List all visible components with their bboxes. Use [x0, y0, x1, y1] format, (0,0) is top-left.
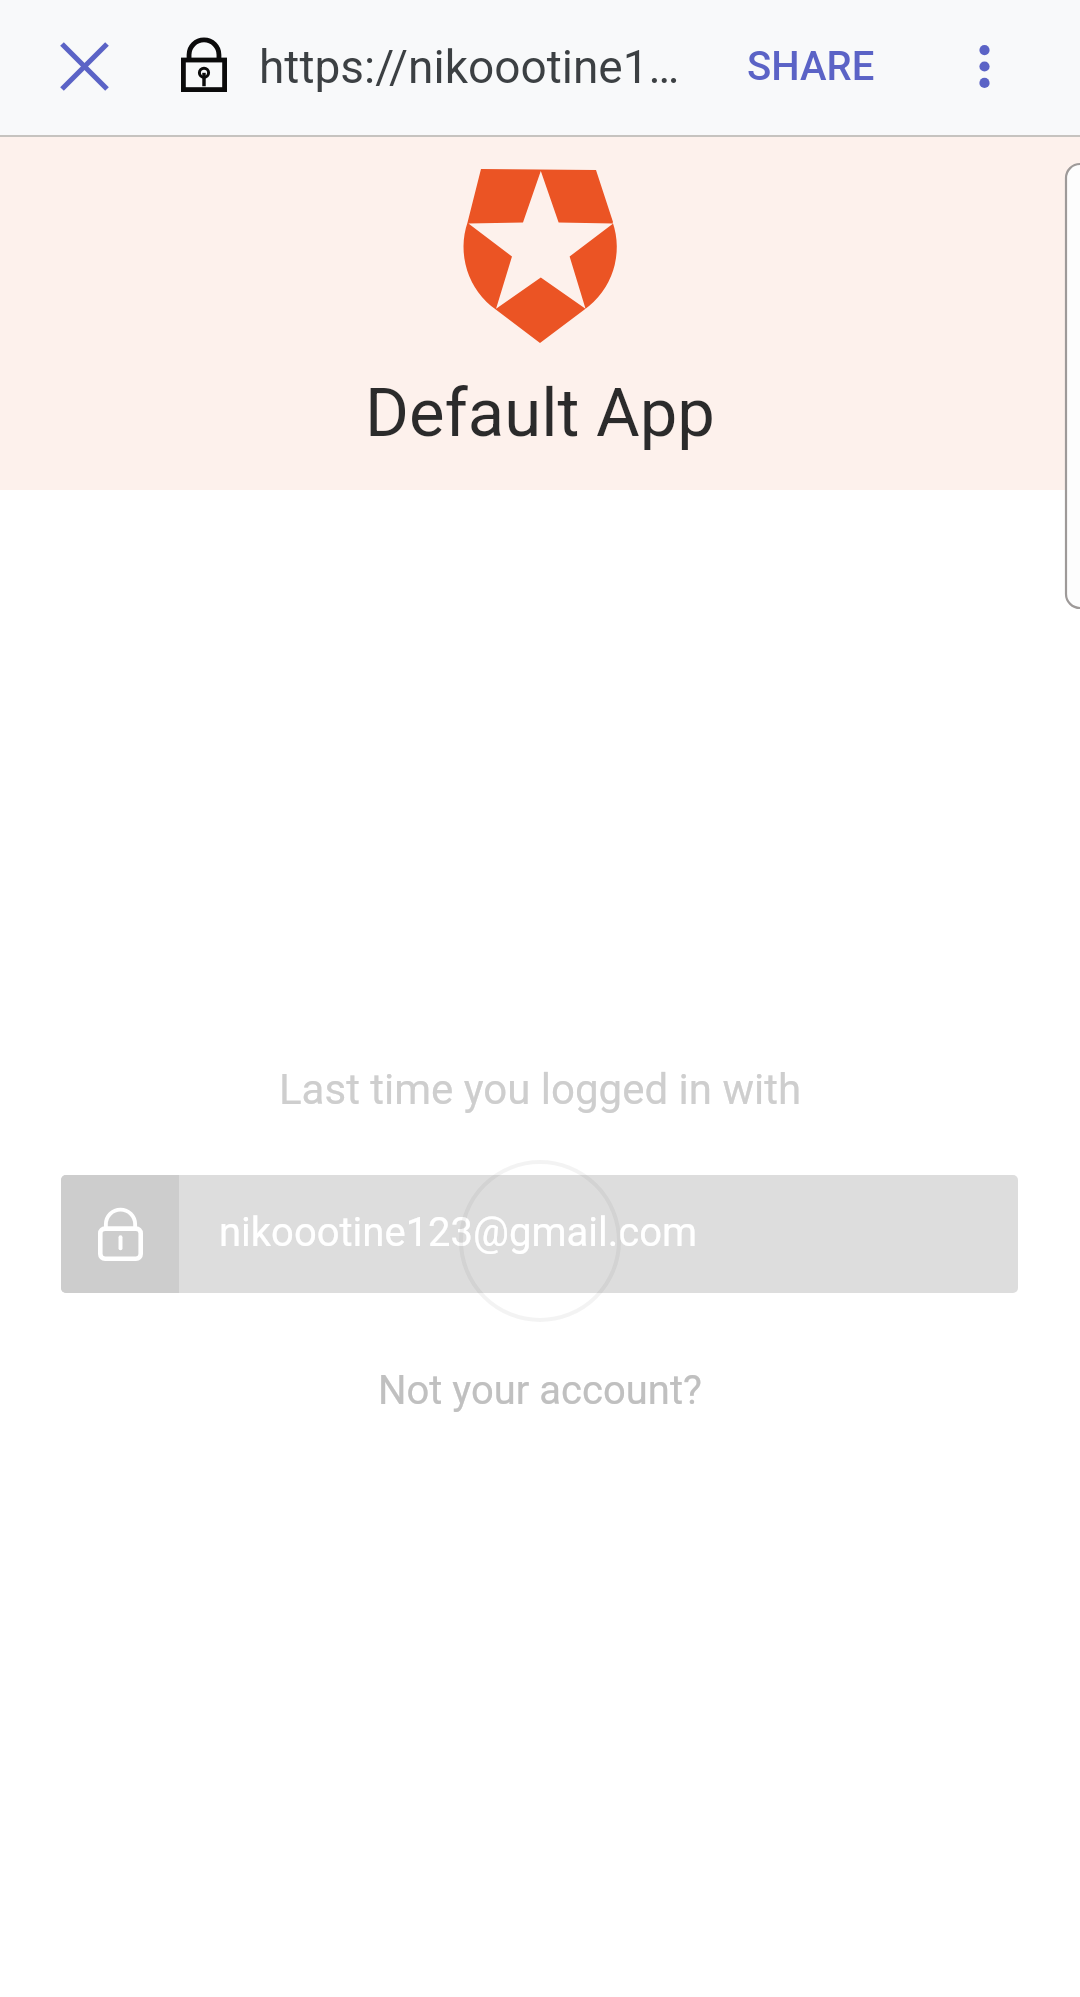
button[interactable]: nikoootine123@gmail.com — [61, 1175, 1018, 1293]
button[interactable]: More options — [916, 0, 1052, 133]
button[interactable]: Not your account? — [369, 1354, 711, 1426]
staticText: nikoootine123@gmail.com — [219, 1209, 698, 1256]
staticText: Default App — [365, 374, 715, 453]
button[interactable]: Close — [12, 0, 156, 133]
button[interactable]: SHARE — [726, 0, 896, 133]
staticText: Not your account? — [378, 1367, 702, 1414]
staticText: SHARE — [747, 43, 875, 90]
staticText: Last time you logged in with — [279, 1065, 802, 1114]
staticText: https://nikoootine1… — [259, 40, 680, 94]
